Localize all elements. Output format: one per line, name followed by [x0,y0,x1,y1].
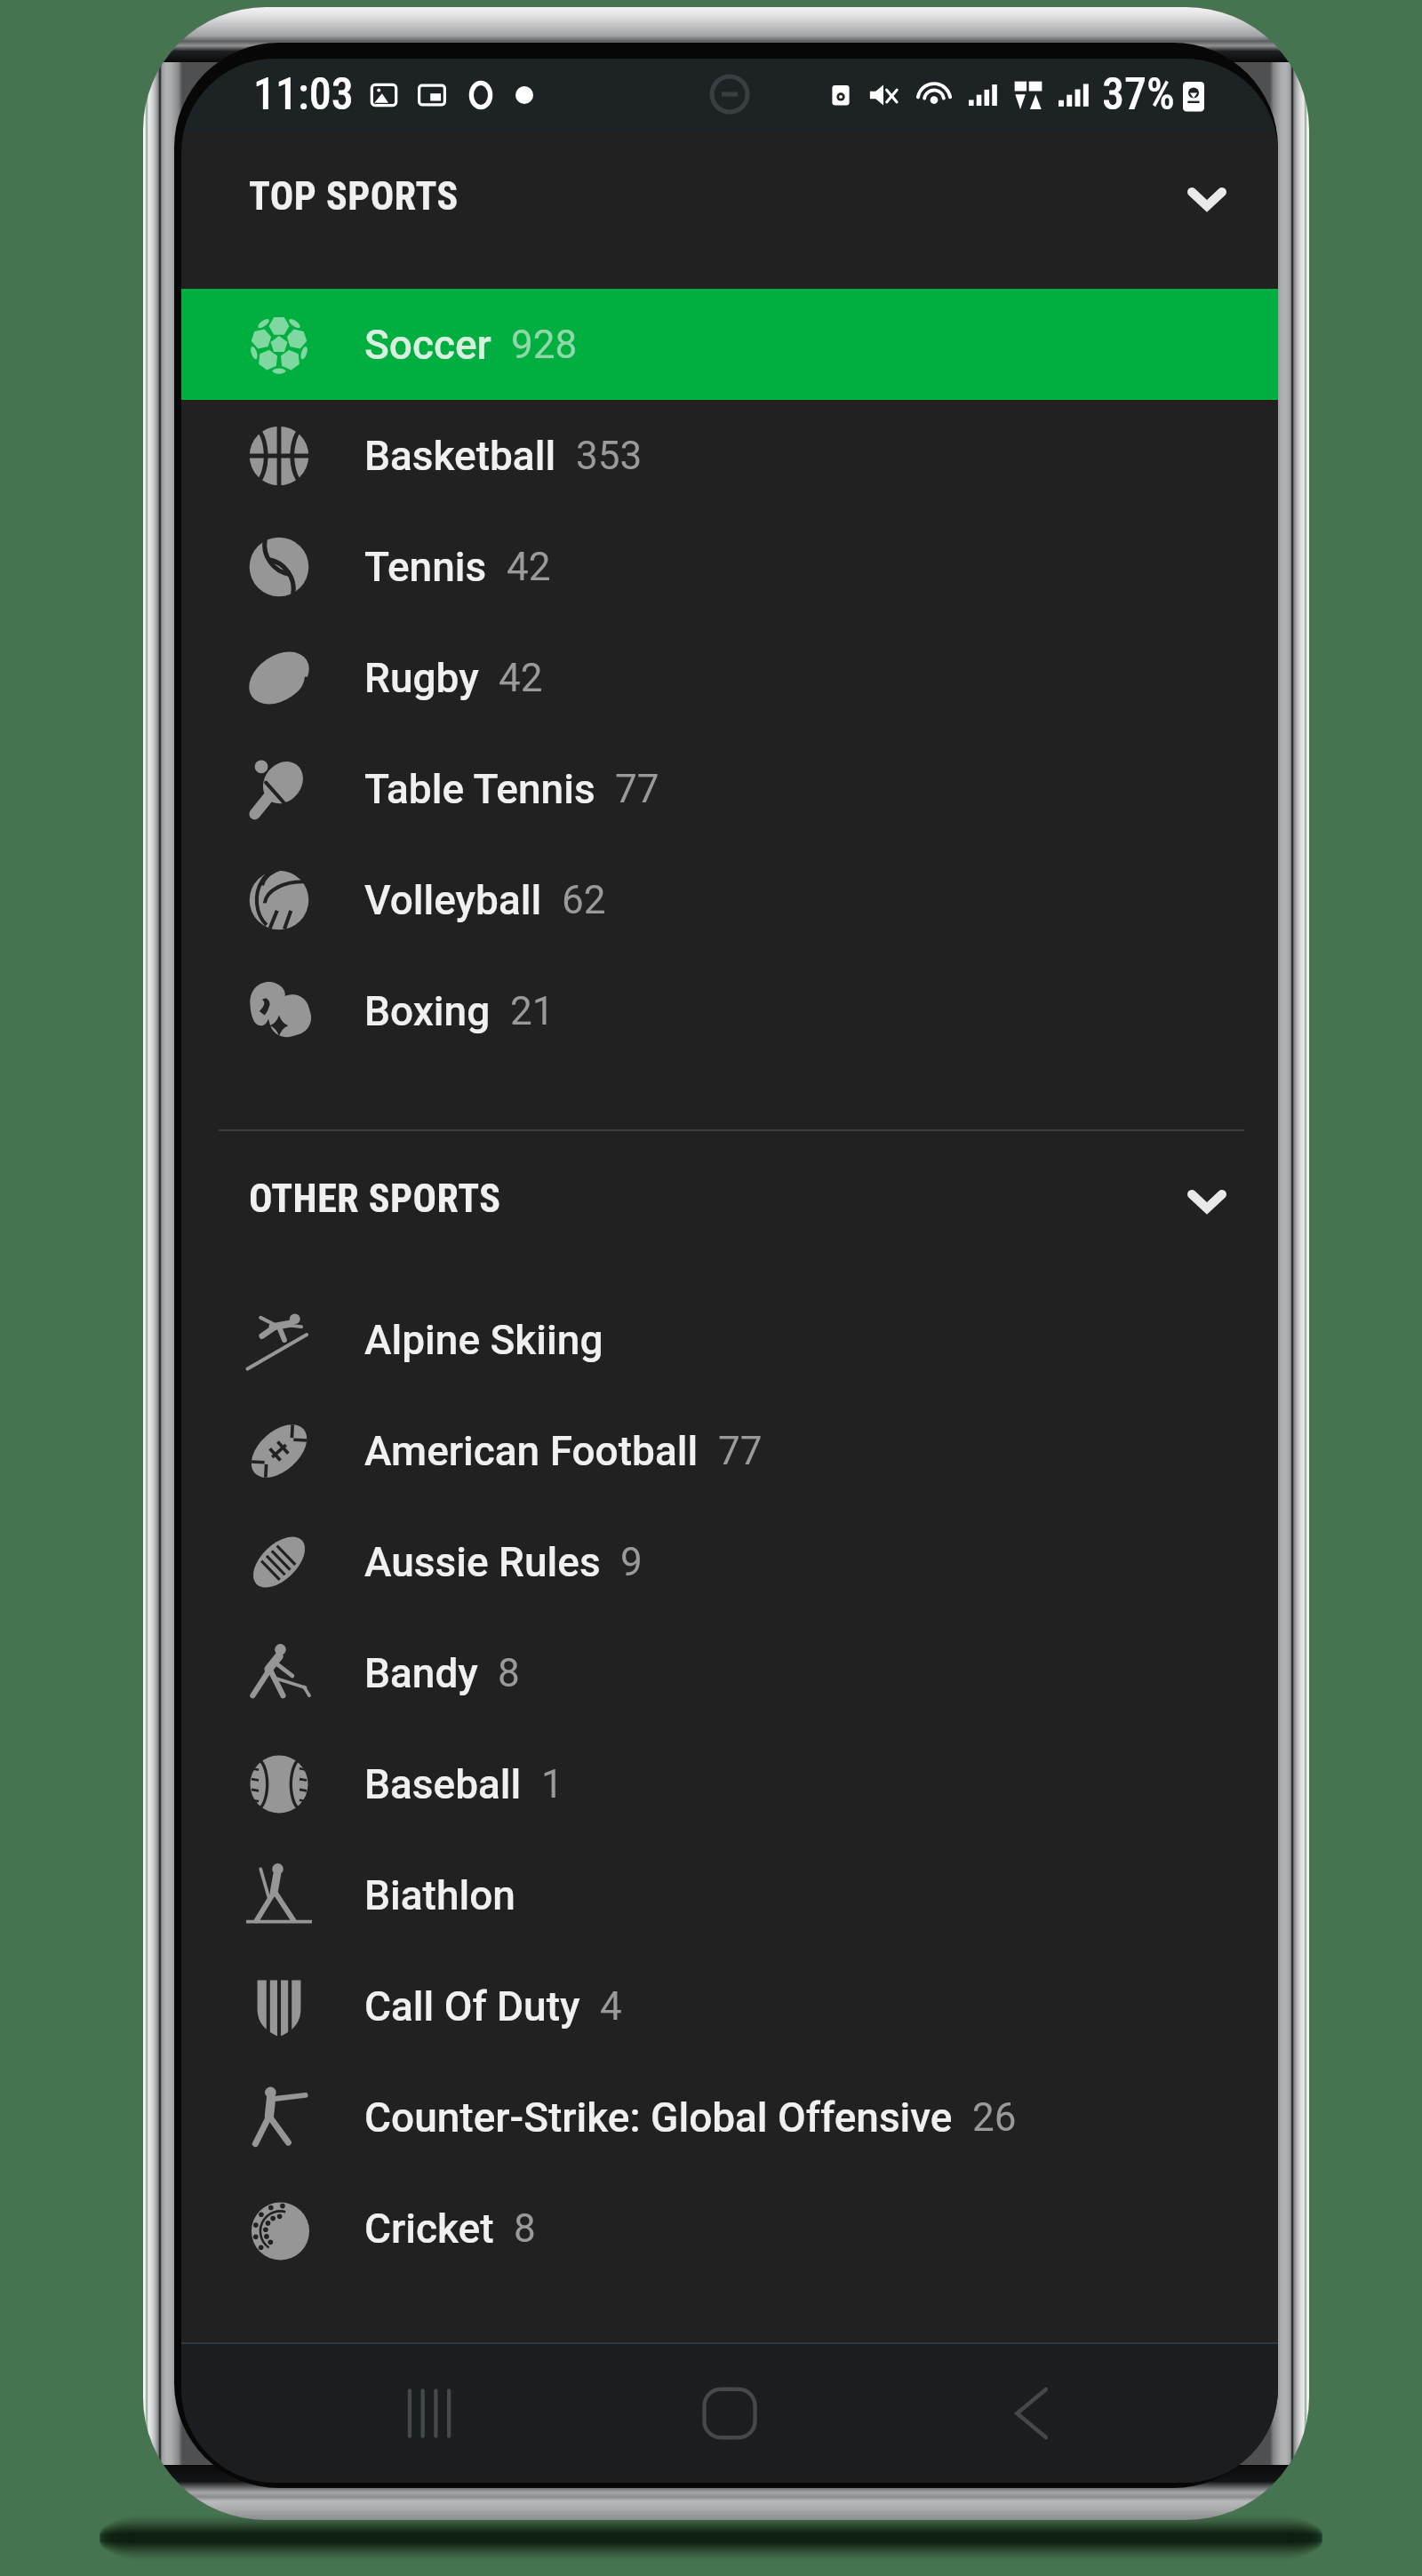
staticText: TOP SPORTS [249,173,459,219]
staticText: 37% [1102,68,1175,121]
other: Collapse OTHER SPORTS [1187,1190,1226,1215]
button[interactable]: Soccer [181,289,1278,400]
button[interactable]: Back [978,2360,1084,2467]
staticText: Tennis [364,543,487,591]
staticText: 9 [620,1539,643,1585]
button[interactable]: OTHER SPORTS [181,1131,1278,1284]
staticText: Call Of Duty [364,1982,580,2030]
staticText: 8 [498,1650,520,1696]
staticText: Cricket [364,2205,494,2253]
button[interactable]: Rugby [181,622,1278,733]
staticText: 1 [541,1761,563,1807]
staticText: 21 [510,988,555,1034]
staticText: Biathlon [364,1871,515,1919]
button[interactable]: Recents [376,2360,483,2467]
staticText: Counter-Strike: Global Offensive [364,2093,953,2141]
other: Collapse TOP SPORTS [1187,187,1226,212]
staticText: American Football [364,1427,699,1475]
staticText: Soccer [364,321,491,369]
button[interactable]: Basketball [181,400,1278,511]
staticText: 77 [718,1428,763,1474]
staticText: 4 [600,1983,622,2030]
staticText: Volleyball [364,876,542,924]
staticText: 42 [507,544,551,590]
staticText: Rugby [364,654,479,702]
staticText: 42 [499,655,543,701]
staticText: Bandy [364,1649,478,1697]
staticText: 77 [615,766,659,812]
button[interactable]: Home [676,2360,783,2467]
button[interactable]: Cricket [181,2173,1278,2284]
button[interactable]: Aussie Rules [181,1506,1278,1617]
staticText: 62 [562,877,606,923]
staticText: 26 [972,2094,1017,2141]
staticText: Aussie Rules [364,1538,601,1586]
staticText: Alpine Skiing [364,1316,603,1364]
button[interactable]: Bandy [181,1617,1278,1728]
button[interactable]: Boxing [181,955,1278,1066]
staticText: 353 [576,433,643,479]
staticText: 928 [511,322,578,368]
staticText: Baseball [364,1760,522,1808]
staticText: Boxing [364,987,491,1035]
button[interactable]: American Football [181,1395,1278,1506]
button[interactable]: Tennis [181,511,1278,622]
button[interactable]: Alpine Skiing [181,1284,1278,1395]
button[interactable]: Table Tennis [181,733,1278,844]
staticText: Basketball [364,432,556,480]
button[interactable]: Counter-Strike: Global Offensive [181,2062,1278,2173]
button[interactable]: Volleyball [181,844,1278,955]
staticText: OTHER SPORTS [249,1176,501,1222]
staticText: Table Tennis [364,765,595,813]
staticText: 11:03 [253,68,354,121]
button[interactable]: TOP SPORTS [181,132,1278,289]
staticText: 8 [514,2205,536,2252]
button[interactable]: Biathlon [181,1839,1278,1950]
button[interactable]: Baseball [181,1728,1278,1839]
button[interactable]: Call Of Duty [181,1950,1278,2062]
